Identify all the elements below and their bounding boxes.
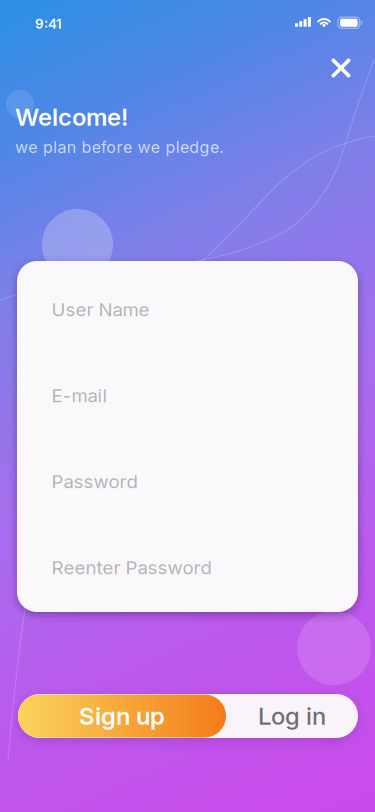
staticText: User Name bbox=[51, 298, 149, 321]
staticText: Sign up bbox=[79, 701, 165, 730]
staticText: 9:41 bbox=[35, 16, 62, 32]
button[interactable]: Log in bbox=[226, 694, 358, 738]
button[interactable]: Sign up bbox=[18, 694, 226, 737]
staticText: Password bbox=[51, 470, 137, 493]
staticText: we plan before we pledge. bbox=[15, 137, 224, 157]
button[interactable]: Close bbox=[319, 46, 363, 90]
staticText: Log in bbox=[258, 701, 326, 730]
staticText: Reenter Password bbox=[51, 556, 211, 579]
staticText: E-mail bbox=[51, 384, 107, 407]
staticText: Welcome! bbox=[15, 102, 128, 131]
